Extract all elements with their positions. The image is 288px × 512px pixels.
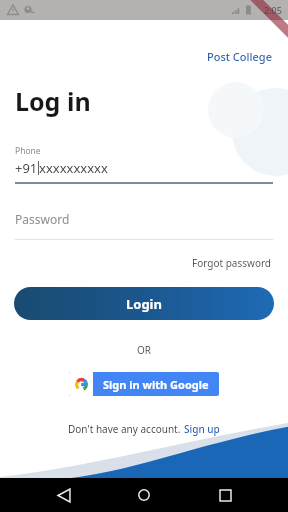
button[interactable]: Back: [47, 478, 81, 512]
staticText: Don't have any account.: [68, 422, 181, 436]
button[interactable]: Recent apps: [208, 478, 242, 512]
staticText: +91: [15, 159, 38, 177]
staticText: Sign in with Google: [103, 377, 209, 392]
button[interactable]: Forgot password: [190, 254, 274, 272]
button[interactable]: Home: [127, 478, 161, 512]
button[interactable]: Password: [15, 211, 273, 240]
button[interactable]: Sign in with Google: [69, 372, 219, 396]
staticText: xxxxxxxxxx: [39, 159, 108, 177]
button[interactable]: Post College: [205, 47, 274, 66]
staticText: Password: [15, 211, 70, 227]
staticText: 2:05: [264, 4, 282, 16]
button[interactable]: Don't have any account.: [68, 422, 220, 436]
button[interactable]: Phone: [15, 145, 273, 184]
button[interactable]: Login: [14, 287, 274, 320]
staticText: Login: [126, 295, 162, 313]
staticText: Sign up: [184, 422, 220, 436]
staticText: Phone: [15, 145, 41, 157]
staticText: Log in: [15, 84, 91, 118]
staticText: OR: [137, 343, 152, 357]
